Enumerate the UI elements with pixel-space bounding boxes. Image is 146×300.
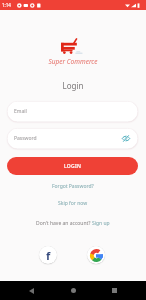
staticText: Don't have an account?: [36, 220, 92, 227]
button[interactable]: Forgot Password?: [48, 182, 98, 191]
button[interactable]: Email: [7, 101, 138, 122]
staticText: f: [46, 248, 51, 263]
staticText: Password: [14, 135, 37, 142]
staticText: Super Commerce: [0, 57, 146, 66]
button[interactable]: Skip for now: [54, 199, 92, 208]
button[interactable]: Sign in with Facebook: [39, 246, 57, 264]
staticText: Email: [14, 108, 27, 115]
button[interactable]: Toggle password visibility: [120, 133, 131, 144]
button[interactable]: Sign up: [92, 220, 110, 227]
staticText: 1:14: [2, 2, 11, 8]
button[interactable]: Sign in with Google: [87, 246, 105, 264]
button[interactable]: Home: [64, 281, 83, 300]
button[interactable]: Password: [7, 128, 138, 149]
staticText: LOGIN: [64, 163, 82, 170]
button[interactable]: Back: [22, 281, 41, 300]
staticText: Login: [0, 80, 146, 91]
button[interactable]: Recents: [105, 281, 124, 300]
button[interactable]: LOGIN: [7, 157, 138, 175]
